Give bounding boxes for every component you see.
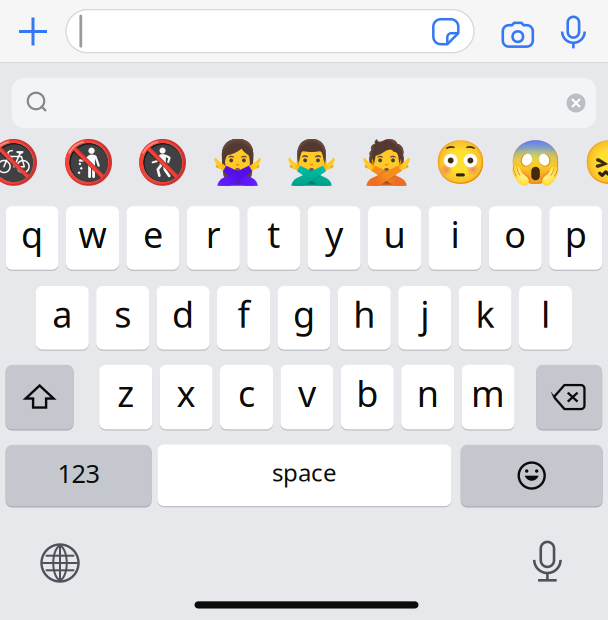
staticText: 🚷	[136, 138, 189, 187]
button[interactable]: p	[549, 205, 602, 271]
button[interactable]: y	[308, 205, 361, 271]
button[interactable]: f	[217, 285, 270, 350]
button[interactable]: w	[66, 205, 119, 271]
button[interactable]: v	[280, 364, 333, 430]
staticText: t	[267, 210, 280, 258]
button[interactable]: 😳	[430, 132, 492, 194]
staticText: n	[417, 369, 439, 417]
staticText: f	[237, 290, 249, 338]
button[interactable]: Dictation	[518, 533, 576, 591]
button[interactable]: n	[401, 364, 454, 430]
button[interactable]: r	[187, 205, 240, 271]
staticText: q	[21, 210, 43, 258]
staticText: 123	[58, 456, 100, 490]
staticText: d	[172, 290, 194, 338]
button[interactable]: Camera	[496, 4, 540, 66]
button[interactable]: Audio message	[553, 2, 593, 64]
button[interactable]: Stickers	[425, 10, 467, 54]
staticText: 🙅	[360, 138, 413, 187]
staticText: space	[272, 456, 337, 488]
button[interactable]: 🚷	[132, 132, 194, 194]
staticText: w	[78, 210, 106, 258]
staticText: y	[325, 210, 343, 258]
staticText: j	[420, 290, 429, 338]
button[interactable]: Clear search	[559, 86, 593, 120]
staticText: l	[541, 290, 550, 338]
staticText: p	[565, 210, 587, 258]
button[interactable]: z	[99, 364, 152, 430]
staticText: c	[238, 369, 255, 417]
button[interactable]: 🙅	[355, 132, 417, 194]
staticText: x	[177, 369, 196, 417]
button[interactable]: s	[96, 285, 149, 350]
staticText: 😳	[434, 138, 487, 187]
staticText: r	[206, 210, 221, 258]
button[interactable]: 😱	[504, 132, 566, 194]
button[interactable]: u	[368, 205, 421, 271]
button[interactable]: k	[459, 285, 512, 350]
button[interactable]: l	[519, 285, 572, 350]
staticText: a	[52, 290, 72, 338]
staticText: 😖	[583, 138, 608, 187]
button[interactable]	[461, 444, 603, 507]
button[interactable]: Add attachment	[5, 0, 61, 62]
staticText: e	[143, 210, 163, 258]
button[interactable]: b	[341, 364, 394, 430]
button[interactable]: 🚯	[57, 132, 119, 194]
staticText: i	[450, 210, 459, 258]
staticText: b	[356, 369, 378, 417]
staticText: 🚳	[0, 138, 40, 187]
button[interactable]: d	[157, 285, 210, 350]
staticText: h	[353, 290, 375, 338]
staticText: z	[117, 369, 134, 417]
staticText: k	[476, 290, 495, 338]
button[interactable]: q	[6, 205, 59, 271]
staticText: o	[504, 210, 526, 258]
button[interactable]: h	[338, 285, 391, 350]
button[interactable]	[6, 364, 74, 430]
staticText: 🙅‍♀️	[211, 138, 264, 187]
button[interactable]: 🙅‍♂️	[281, 132, 343, 194]
staticText: g	[293, 290, 315, 338]
staticText: m	[471, 369, 505, 417]
button[interactable]: space	[157, 444, 451, 507]
button[interactable]: a	[36, 285, 89, 350]
staticText: 🚯	[62, 138, 115, 187]
staticText: v	[298, 369, 316, 417]
button[interactable]: 😖	[579, 132, 608, 194]
staticText: u	[383, 210, 405, 258]
button[interactable]: t	[247, 205, 300, 271]
button[interactable]: 🙅‍♀️	[206, 132, 268, 194]
button[interactable]: c	[220, 364, 273, 430]
button[interactable]: Next keyboard	[32, 535, 88, 591]
button[interactable]: x	[160, 364, 213, 430]
staticText: 😱	[509, 138, 562, 187]
button[interactable]	[536, 364, 602, 430]
button[interactable]: i	[428, 205, 481, 271]
button[interactable]: 🚳	[0, 132, 45, 194]
staticText: s	[114, 290, 131, 338]
button[interactable]: j	[398, 285, 451, 350]
button[interactable]: m	[462, 364, 515, 430]
staticText: 🙅‍♂️	[285, 138, 338, 187]
button[interactable]: g	[277, 285, 330, 350]
button[interactable]: e	[126, 205, 179, 271]
button[interactable]: 123	[6, 444, 152, 507]
button[interactable]: o	[489, 205, 542, 271]
